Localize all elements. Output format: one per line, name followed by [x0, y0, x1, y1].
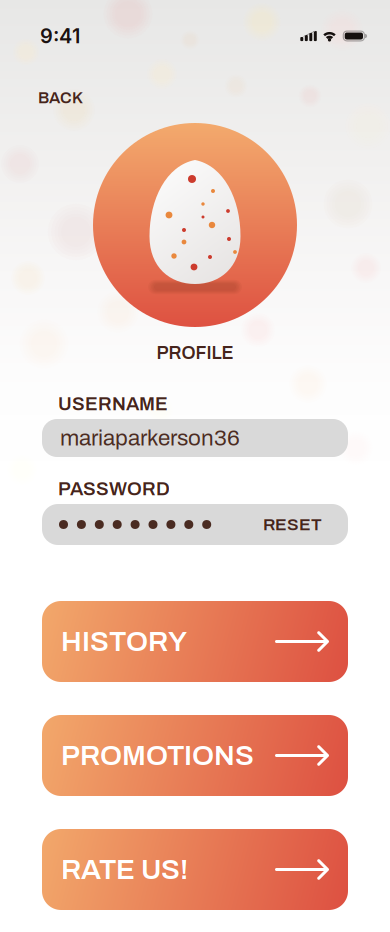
button[interactable]: PROMOTIONS [42, 715, 348, 796]
staticText: USERNAME [58, 394, 168, 414]
button[interactable]: RESET [253, 507, 322, 542]
staticText: mariaparkerson36 [60, 426, 240, 450]
button[interactable]: BACK [38, 86, 158, 110]
button[interactable]: HISTORY [42, 601, 348, 682]
staticText: 9:41 [40, 24, 80, 48]
staticText: RESET [263, 515, 322, 534]
staticText: HISTORY [61, 626, 187, 657]
staticText: RATE US! [61, 854, 188, 885]
staticText: PROFILE [156, 343, 233, 363]
staticText: BACK [38, 89, 83, 107]
button[interactable]: RATE US! [42, 829, 348, 910]
staticText: PASSWORD [58, 479, 170, 499]
staticText: PROMOTIONS [61, 740, 254, 771]
